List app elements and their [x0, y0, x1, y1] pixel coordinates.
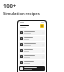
- button[interactable]: Open: [19, 42, 45, 47]
- button[interactable]: Open: [19, 54, 45, 59]
- button[interactable]: Open: [19, 36, 45, 41]
- staticText: 100+: [3, 2, 17, 10]
- button[interactable]: Add recipe: [40, 24, 44, 28]
- button[interactable]: Open: [19, 30, 45, 35]
- button[interactable]: Open: [19, 48, 45, 53]
- staticText: Simulation recipes: [3, 11, 40, 17]
- button[interactable]: [19, 66, 45, 71]
- button[interactable]: Open: [19, 60, 45, 65]
